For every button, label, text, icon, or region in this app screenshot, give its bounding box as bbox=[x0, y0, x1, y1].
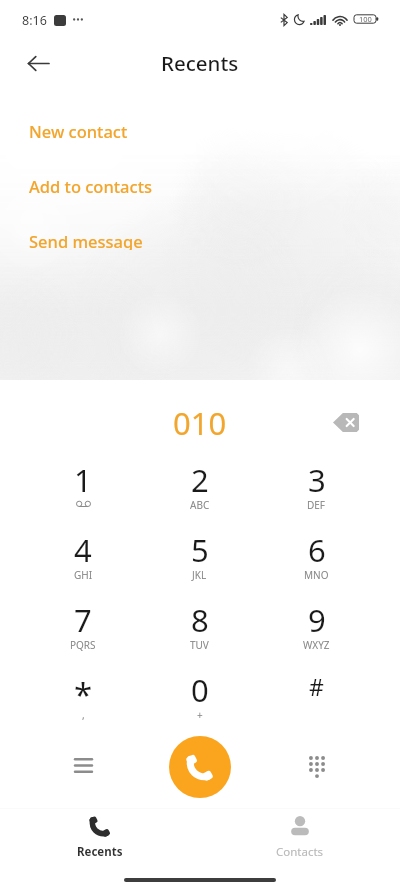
staticText: 100 bbox=[359, 14, 372, 24]
button[interactable]: Dialpad bbox=[293, 741, 341, 789]
staticText: + bbox=[197, 708, 203, 722]
staticText: 7 bbox=[74, 599, 92, 641]
button[interactable]: Add to contacts bbox=[0, 175, 400, 195]
staticText: 3 bbox=[308, 459, 326, 501]
staticText: WXYZ bbox=[303, 638, 330, 652]
button[interactable]: 6 bbox=[258, 520, 375, 590]
staticText: MNO bbox=[304, 568, 329, 582]
staticText: , bbox=[82, 708, 85, 722]
button[interactable]: 4 bbox=[25, 520, 141, 590]
staticText: 0 bbox=[191, 669, 209, 711]
staticText: Add to contacts bbox=[29, 175, 152, 195]
staticText: 010 bbox=[173, 402, 227, 444]
staticText: 5 bbox=[191, 529, 209, 571]
staticText: 8 bbox=[191, 599, 209, 641]
staticText: 1 bbox=[74, 459, 92, 501]
button[interactable]: 1 bbox=[25, 450, 141, 520]
staticText: ABC bbox=[190, 498, 210, 512]
button[interactable]: 0 bbox=[141, 660, 258, 730]
button[interactable]: Send message bbox=[0, 230, 400, 250]
staticText: Send message bbox=[29, 230, 143, 250]
staticText: New contact bbox=[29, 120, 128, 140]
button[interactable]: 7 bbox=[25, 590, 141, 660]
staticText: 8:16 bbox=[22, 12, 47, 29]
button[interactable]: 9 bbox=[258, 590, 375, 660]
button[interactable]: 3 bbox=[258, 450, 375, 520]
button[interactable]: 5 bbox=[141, 520, 258, 590]
staticText: PQRS bbox=[70, 638, 96, 652]
button[interactable]: Backspace bbox=[324, 400, 368, 444]
staticText: Contacts bbox=[276, 844, 324, 860]
button[interactable]: 8 bbox=[141, 590, 258, 660]
staticText: 9 bbox=[308, 599, 326, 641]
button[interactable]: Recents bbox=[35, 812, 165, 860]
button[interactable]: Contacts bbox=[235, 812, 365, 860]
staticText: JKL bbox=[192, 568, 207, 582]
staticText: TUV bbox=[190, 638, 209, 652]
button[interactable]: Call log options bbox=[59, 741, 107, 789]
staticText: * bbox=[74, 672, 93, 717]
staticText: DEF bbox=[307, 498, 326, 512]
staticText: Recents bbox=[77, 844, 123, 860]
staticText: # bbox=[309, 671, 324, 702]
staticText: GHI bbox=[74, 568, 93, 582]
button[interactable]: 2 bbox=[141, 450, 258, 520]
staticText: 4 bbox=[74, 529, 92, 571]
button[interactable]: Back bbox=[14, 39, 62, 87]
button[interactable]: Call bbox=[169, 736, 231, 798]
staticText: 2 bbox=[191, 459, 209, 501]
button[interactable]: New contact bbox=[0, 120, 400, 140]
button[interactable]: * bbox=[25, 660, 141, 730]
staticText: Recents bbox=[161, 49, 239, 77]
staticText: 6 bbox=[308, 529, 326, 571]
button[interactable]: # bbox=[258, 660, 375, 730]
